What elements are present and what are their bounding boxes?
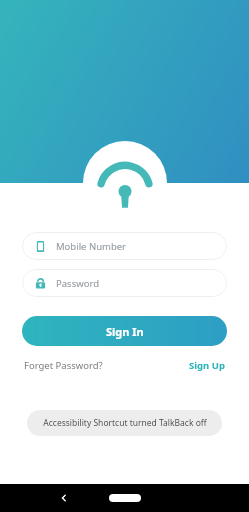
button[interactable]: Home [109, 494, 141, 502]
staticText: Mobile Number [56, 240, 127, 253]
staticText: Forget Password? [24, 359, 103, 372]
staticText: Accessibility Shortcut turned TalkBack o… [43, 417, 207, 429]
staticText: Sign Up [189, 359, 225, 372]
staticText: Sign In [106, 324, 144, 339]
button[interactable]: Forget Password? [24, 359, 103, 372]
button[interactable]: Mobile Number [22, 232, 227, 260]
staticText: Password [56, 277, 99, 290]
button[interactable]: Back [52, 486, 76, 510]
button[interactable]: Sign In [22, 316, 227, 346]
button[interactable]: Sign Up [189, 359, 225, 372]
other: Mobile Number [35, 241, 46, 252]
button[interactable]: Password [22, 269, 227, 297]
other: Password [35, 278, 46, 289]
